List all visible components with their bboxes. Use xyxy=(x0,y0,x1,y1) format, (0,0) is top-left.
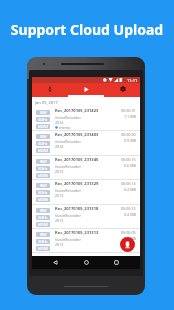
staticText: WAV xyxy=(40,160,47,164)
staticText: 00:00:12 xyxy=(121,206,136,211)
staticText: 00:00:13 xyxy=(121,181,136,186)
staticText: /voiceRecorder xyxy=(55,213,81,218)
staticText: 2013 xyxy=(55,242,64,247)
staticText: 32kHz xyxy=(38,167,48,171)
staticText: 32kHz xyxy=(38,142,48,146)
staticText: 2013 xyxy=(55,218,64,223)
button[interactable]: Settings xyxy=(104,83,140,97)
staticText: 00:00:31 xyxy=(121,108,136,113)
staticText: 2014 xyxy=(55,144,64,149)
button[interactable]: WAV xyxy=(32,131,140,156)
staticText: 0.6 MB xyxy=(124,163,136,168)
staticText: 11:11 xyxy=(127,78,138,83)
staticText: MONO xyxy=(38,174,49,178)
staticText: /voiceRecorder xyxy=(55,188,81,193)
staticText: 00:00:30 xyxy=(121,132,136,137)
staticText: 0.4 MB xyxy=(124,212,136,217)
staticText: Support Cloud Upload xyxy=(0,20,174,39)
staticText: Rec_20170105_231329 xyxy=(55,181,99,187)
staticText: 32kHz xyxy=(38,191,48,195)
staticText: 1.1 MB xyxy=(124,114,136,119)
button[interactable]: Record tab xyxy=(32,83,68,97)
button[interactable]: WAV xyxy=(32,205,140,229)
staticText: MONO xyxy=(38,198,49,202)
staticText: /voiceRecorder xyxy=(55,237,81,242)
staticText: /voiceRecorder xyxy=(55,164,81,169)
staticText: MONO xyxy=(38,149,49,153)
staticText: MONO xyxy=(38,247,49,251)
button[interactable]: Home xyxy=(80,256,93,269)
staticText: /voiceRecorder xyxy=(55,139,81,144)
staticText: WAV xyxy=(40,135,47,139)
button[interactable]: Recents xyxy=(110,256,123,269)
staticText: 2014 xyxy=(55,120,64,125)
button[interactable]: WAV xyxy=(32,107,140,131)
button[interactable]: Back xyxy=(49,256,62,269)
staticText: 0.2 MB xyxy=(124,236,136,241)
button[interactable]: Record xyxy=(120,237,135,252)
staticText: Rec_20170105_231318 xyxy=(55,206,99,212)
staticText: 2013 xyxy=(55,169,64,174)
staticText: MONO xyxy=(38,223,49,227)
button[interactable]: WAV xyxy=(32,156,140,180)
staticText: Rec_20170105_231403 xyxy=(55,132,99,138)
staticText: 32kHz xyxy=(38,240,48,244)
staticText: /voiceRecorder xyxy=(55,115,81,120)
staticText: WAV xyxy=(40,184,47,188)
staticText: Rec_20170105_231313 xyxy=(55,230,99,236)
staticText: 32kHz xyxy=(38,118,48,122)
staticText: Rec_20170105_231345 xyxy=(55,157,99,163)
staticText: memo xyxy=(59,125,71,130)
staticText: 0.9 MB xyxy=(124,138,136,143)
staticText: 2013 xyxy=(55,193,64,198)
staticText: 0.4 MB xyxy=(124,187,136,192)
staticText: WAV xyxy=(40,209,47,213)
staticText: 00:00:05 xyxy=(121,230,136,235)
staticText: Jan 05, 2017 xyxy=(35,100,58,105)
staticText: 32kHz xyxy=(38,216,48,220)
staticText: Rec_20170105_231423 xyxy=(55,108,99,114)
staticText: MONO xyxy=(38,125,49,129)
staticText: WAV xyxy=(40,111,47,115)
staticText: WAV xyxy=(40,233,47,237)
staticText: 00:00:15 xyxy=(121,157,136,162)
button[interactable]: Play tab xyxy=(68,83,104,97)
button[interactable]: WAV xyxy=(32,180,140,205)
button[interactable]: WAV xyxy=(32,229,140,253)
